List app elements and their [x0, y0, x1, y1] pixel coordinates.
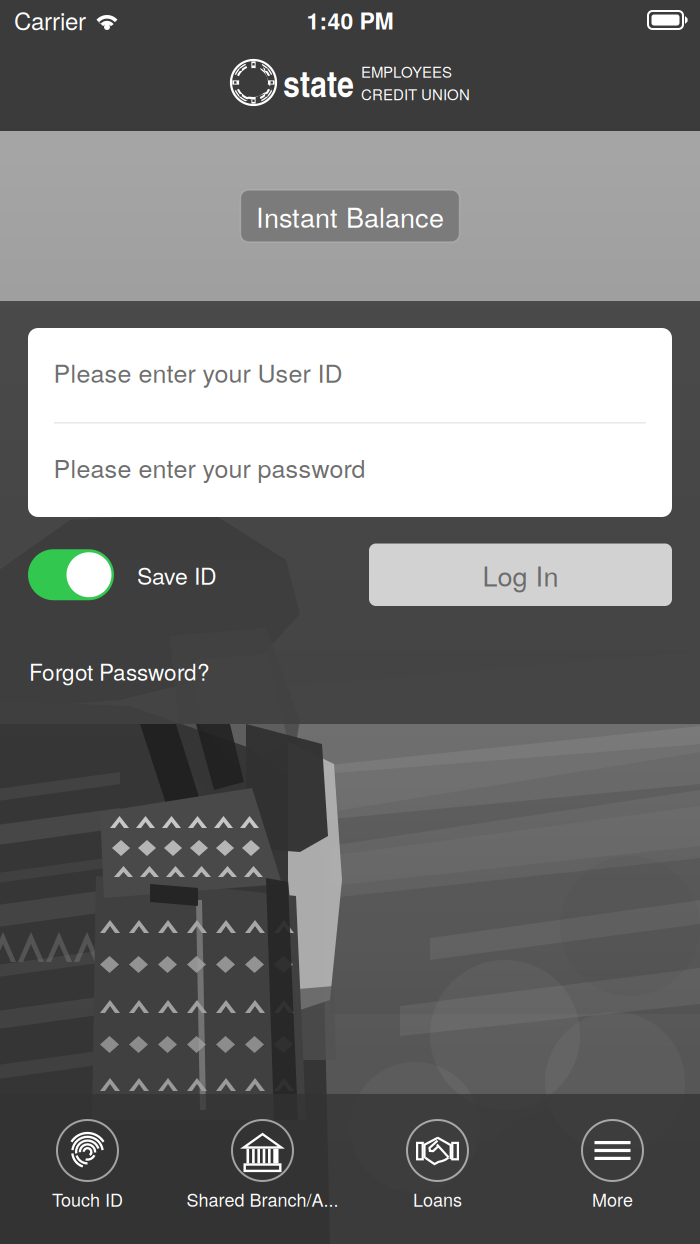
- button[interactable]: Loans: [350, 1094, 525, 1244]
- staticText: More: [592, 1186, 633, 1212]
- staticText: Forgot Password?: [29, 655, 210, 687]
- button[interactable]: Touch ID: [0, 1094, 175, 1244]
- staticText: Please enter your password: [53, 449, 365, 485]
- staticText: Save ID: [137, 558, 217, 591]
- button[interactable]: Forgot Password?: [0, 606, 700, 695]
- button[interactable]: More: [525, 1094, 700, 1244]
- staticText: Touch ID: [52, 1186, 123, 1212]
- staticText: Shared Branch/A...: [186, 1186, 338, 1212]
- staticText: Loans: [413, 1186, 462, 1212]
- staticText: state: [283, 56, 354, 109]
- staticText: CREDIT UNION: [361, 83, 470, 104]
- staticText: Please enter your User ID: [53, 354, 342, 390]
- button[interactable]: Save ID: [28, 549, 217, 600]
- staticText: Carrier: [14, 3, 86, 37]
- button[interactable]: Instant Balance: [240, 190, 459, 242]
- button[interactable]: Log In: [369, 543, 672, 606]
- staticText: Log In: [482, 555, 558, 594]
- staticText: EMPLOYEES: [361, 60, 452, 82]
- staticText: 1:40 PM: [306, 3, 393, 36]
- button[interactable]: Shared Branch/A...: [175, 1094, 350, 1244]
- staticText: Instant Balance: [256, 197, 444, 235]
